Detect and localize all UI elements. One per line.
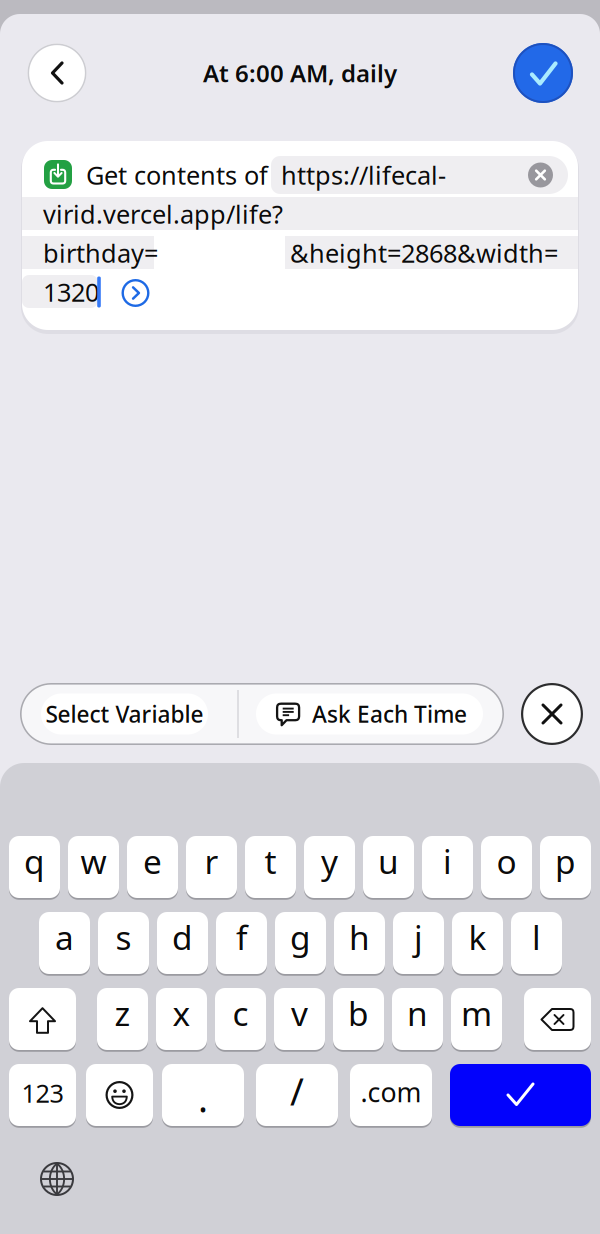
staticText: q [24,839,45,883]
button[interactable] [27,43,86,102]
button[interactable]: z [97,988,148,1052]
staticText: 1320 [43,275,99,309]
staticText: h [349,915,370,959]
staticText: l [532,915,541,959]
button[interactable]: Ask Each Time [256,693,483,734]
button[interactable]: / [256,1064,338,1128]
staticText: &height=2868&width= [290,236,558,270]
button[interactable]: j [393,912,444,976]
staticText: Get contents of [86,158,268,192]
staticText: w [80,839,106,883]
button[interactable]: y [304,836,355,900]
staticText: v [291,991,308,1035]
button[interactable] [524,988,591,1052]
button[interactable]: w [68,836,119,900]
staticText: i [443,839,452,883]
button[interactable]: u [363,836,414,900]
button[interactable]: c [215,988,266,1052]
staticText: o [496,839,516,883]
button[interactable]: k [452,912,503,976]
button[interactable]: t [245,836,296,900]
button[interactable] [513,43,573,103]
button[interactable] [40,1162,74,1196]
button[interactable] [86,1064,153,1128]
button[interactable] [121,279,149,307]
staticText: 123 [21,1076,63,1110]
staticText: f [236,915,247,959]
button[interactable]: q [9,836,60,900]
button[interactable]: d [157,912,208,976]
staticText: t [264,839,276,883]
button[interactable]: l [511,912,562,976]
button[interactable] [521,683,583,745]
staticText: Ask Each Time [312,699,467,729]
staticText: virid.vercel.app/life? [43,197,283,231]
staticText: e [143,839,162,883]
button[interactable]: .com [350,1064,432,1128]
staticText: n [407,991,428,1035]
staticText: .com [360,1074,421,1110]
staticText: y [321,839,338,883]
staticText: At 6:00 AM, daily [203,57,397,89]
button[interactable]: . [162,1064,244,1128]
staticText: b [348,991,369,1035]
button[interactable]: s [98,912,149,976]
staticText: Select Variable [45,699,203,729]
staticText: g [290,915,311,959]
button[interactable]: e [127,836,178,900]
button[interactable] [528,162,553,187]
staticText: d [172,915,193,959]
button[interactable]: i [422,836,473,900]
button[interactable]: f [216,912,267,976]
button[interactable]: v [274,988,325,1052]
staticText: https://lifecal- [281,158,446,192]
staticText: / [290,1066,304,1116]
staticText: k [468,915,486,959]
button[interactable]: b [333,988,384,1052]
button[interactable] [9,988,76,1052]
button[interactable]: r [186,836,237,900]
button[interactable]: Select Variable [41,693,208,734]
staticText: u [378,839,399,883]
staticText: p [555,839,576,883]
button[interactable]: h [334,912,385,976]
staticText: z [114,991,130,1035]
staticText: c [232,991,248,1035]
button[interactable]: g [275,912,326,976]
button[interactable]: m [451,988,502,1052]
button[interactable]: n [392,988,443,1052]
staticText: . [198,1073,208,1123]
staticText: birthday= [43,236,158,270]
staticText: r [204,839,218,883]
button[interactable]: a [39,912,90,976]
button[interactable]: 123 [9,1064,76,1128]
button[interactable]: o [481,836,532,900]
staticText: x [172,991,190,1035]
staticText: j [414,915,423,959]
button[interactable]: p [540,836,591,900]
staticText: a [55,915,74,959]
staticText: s [115,915,131,959]
staticText: m [461,991,492,1035]
button[interactable] [450,1064,591,1128]
button[interactable]: x [156,988,207,1052]
